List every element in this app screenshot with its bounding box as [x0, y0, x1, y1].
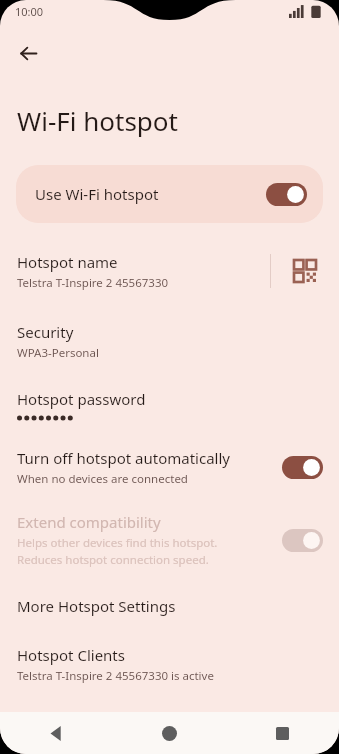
button[interactable]: Recent apps: [226, 712, 339, 754]
staticText: 10:00: [15, 4, 44, 19]
staticText: Extend compatibility: [17, 512, 161, 532]
staticText: Telstra T-Inspire 2 45567330 is active: [17, 668, 214, 684]
button[interactable]: Home: [113, 712, 226, 754]
button[interactable]: Use Wi-Fi hotspot: [16, 165, 323, 223]
staticText: Use Wi-Fi hotspot: [35, 184, 159, 204]
staticText: Wi-Fi hotspot: [17, 103, 178, 138]
button[interactable]: More Hotspot Settings: [0, 596, 339, 616]
button[interactable]: Back: [6, 31, 50, 75]
button[interactable]: Hotspot Clients: [0, 645, 339, 684]
button[interactable]: Back: [0, 712, 113, 754]
staticText: Turn off hotspot automatically: [17, 448, 230, 468]
staticText: When no devices are connected: [17, 471, 188, 487]
button[interactable]: Hotspot name: [0, 248, 270, 294]
staticText: Hotspot Clients: [17, 645, 125, 665]
staticText: Helps other devices find this hotspot.: [17, 535, 218, 551]
staticText: Security: [17, 322, 74, 342]
button[interactable]: Security: [0, 322, 339, 361]
button[interactable]: Extend compatibility: [0, 512, 339, 568]
staticText: Hotspot password: [17, 389, 146, 409]
button[interactable]: Turn off hotspot automatically: [0, 448, 339, 487]
button[interactable]: Hotspot password: [0, 389, 339, 421]
button[interactable]: Share hotspot QR code: [271, 248, 339, 294]
staticText: Hotspot name: [17, 252, 118, 272]
staticText: WPA3-Personal: [17, 345, 99, 361]
staticText: Reduces hotspot connection speed.: [17, 552, 209, 568]
staticText: More Hotspot Settings: [17, 596, 176, 616]
staticText: Telstra T-Inspire 2 45567330: [17, 275, 169, 291]
